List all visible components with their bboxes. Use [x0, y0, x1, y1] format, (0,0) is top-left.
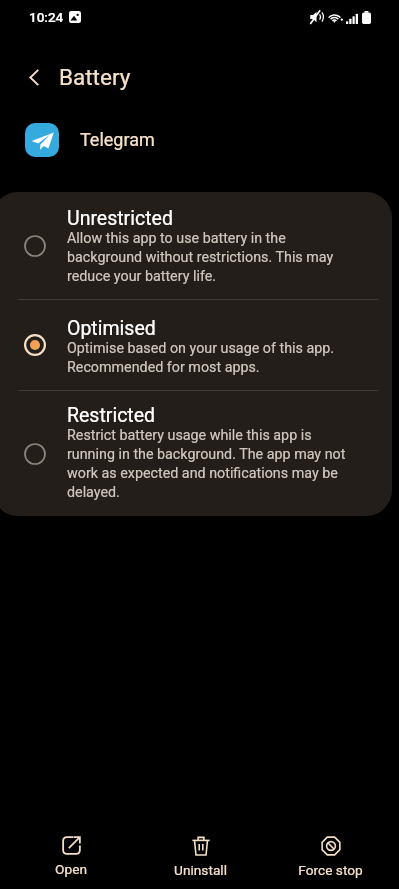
staticText: Optimise based on your usage of this app…	[67, 340, 353, 376]
button[interactable]: Unrestricted	[0, 192, 392, 299]
button[interactable]: Optimised	[0, 300, 392, 390]
staticText: Open	[55, 861, 87, 877]
button[interactable]: Restricted	[0, 391, 392, 516]
staticText: Restrict battery usage while this app is…	[67, 427, 353, 501]
button[interactable]: Force stop	[276, 805, 384, 889]
staticText: Optimised	[67, 317, 156, 340]
staticText: 10:24	[29, 9, 64, 25]
staticText: Telegram	[80, 129, 155, 150]
staticText: Allow this app to use battery in the bac…	[67, 230, 353, 285]
staticText: Battery	[59, 64, 131, 90]
staticText: Force stop	[298, 862, 363, 878]
staticText: Uninstall	[174, 862, 227, 878]
button[interactable]: Uninstall	[146, 805, 254, 889]
staticText: Restricted	[67, 404, 156, 427]
button[interactable]: Open	[17, 805, 125, 889]
button[interactable]: Back	[16, 59, 52, 95]
staticText: Unrestricted	[67, 207, 173, 230]
